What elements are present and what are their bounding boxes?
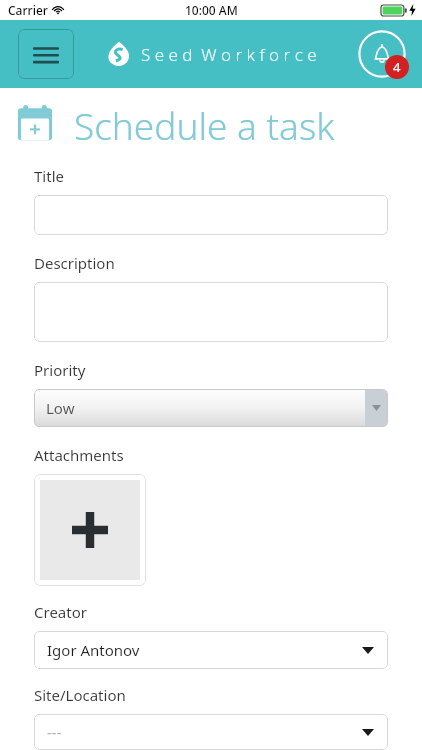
button[interactable]: --- <box>34 714 388 750</box>
staticText: Priority <box>34 360 86 380</box>
staticText: Description <box>34 253 115 273</box>
staticText: 10:00 AM <box>185 2 238 18</box>
button[interactable]: Notifications, 4 unread <box>356 28 408 80</box>
button[interactable]: Add attachment <box>40 480 140 580</box>
button[interactable]: Igor Antonov <box>34 631 388 669</box>
button[interactable]: Low <box>34 389 388 427</box>
button[interactable]: Text input <box>34 282 388 342</box>
staticText: Creator <box>34 602 87 622</box>
staticText: Site/Location <box>34 685 126 705</box>
staticText: Attachments <box>34 445 124 465</box>
button[interactable]: Text input <box>34 195 388 235</box>
staticText: Low <box>46 398 75 418</box>
staticText: 4 <box>393 58 401 76</box>
staticText: Schedule a task <box>74 100 335 150</box>
staticText: --- <box>47 722 62 742</box>
button[interactable]: Menu <box>18 29 74 79</box>
staticText: Title <box>34 166 64 186</box>
staticText: S e e d W o r k f o r c e <box>141 43 317 66</box>
staticText: Carrier <box>8 2 48 18</box>
staticText: Igor Antonov <box>47 640 140 660</box>
